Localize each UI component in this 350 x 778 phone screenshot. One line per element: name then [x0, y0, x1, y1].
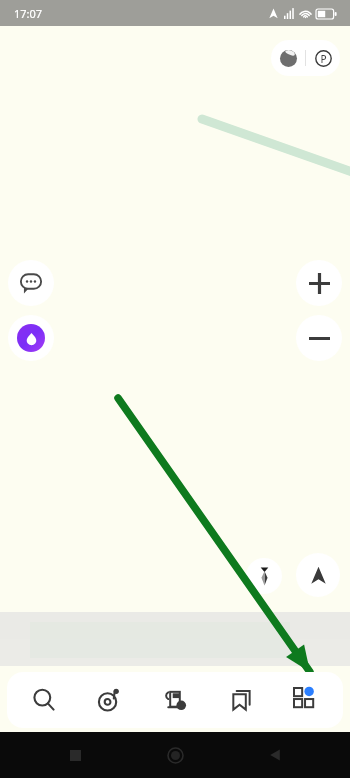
button[interactable]: Fuel — [146, 672, 204, 728]
button[interactable]: Compass — [246, 558, 282, 594]
button[interactable]: Parking — [306, 40, 340, 76]
button[interactable]: Bookmarks — [212, 672, 270, 728]
button[interactable]: Services — [277, 672, 335, 728]
staticText: P — [320, 52, 327, 66]
button[interactable]: Back — [260, 740, 290, 770]
button[interactable]: Zoom out — [296, 315, 342, 361]
button[interactable]: Recents — [60, 740, 90, 770]
staticText: 17:07 — [14, 6, 43, 21]
button[interactable]: Zoom in — [296, 260, 342, 306]
button[interactable]: Home — [160, 740, 190, 770]
button[interactable]: Map layers — [271, 40, 305, 76]
button[interactable]: Messages — [8, 260, 54, 306]
button[interactable]: My location — [296, 553, 340, 597]
button[interactable]: Alice assistant — [8, 315, 54, 361]
button[interactable]: Routes — [80, 672, 138, 728]
button[interactable]: Search — [15, 672, 73, 728]
